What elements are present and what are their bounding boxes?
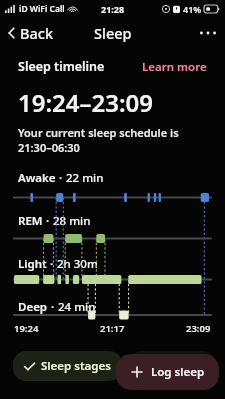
staticText: ·: [47, 256, 57, 272]
staticText: 22 min: [66, 170, 104, 186]
staticText: Light: [18, 256, 47, 272]
staticText: 21:28: [101, 3, 125, 15]
button[interactable]: Back: [0, 18, 62, 48]
staticText: Sleep score: [140, 358, 204, 374]
button[interactable]: Log sleep: [116, 354, 219, 390]
staticText: Sleep: [94, 23, 132, 43]
staticText: 21:17: [100, 322, 125, 335]
staticText: ·: [43, 213, 53, 229]
staticText: 2h 30m: [57, 256, 98, 272]
staticText: REM: [18, 213, 43, 229]
button[interactable]: Sleep score: [129, 351, 215, 381]
staticText: Sleep stages: [41, 358, 111, 374]
staticText: ·: [48, 299, 58, 315]
staticText: Log sleep: [151, 364, 205, 380]
staticText: 28 min: [53, 213, 91, 229]
staticText: Learn more: [142, 59, 207, 75]
button[interactable]: Learn more: [142, 59, 207, 75]
staticText: 21:30–06:30: [18, 140, 80, 155]
staticText: Deep: [18, 299, 48, 315]
staticText: iD WiFi Call: [19, 3, 65, 15]
staticText: Back: [20, 23, 54, 43]
staticText: ·: [56, 170, 66, 186]
staticText: Sleep timeline: [18, 58, 105, 75]
staticText: 19:24–23:09: [18, 86, 154, 119]
button[interactable]: Sleep stages: [13, 351, 122, 381]
staticText: 23:09: [186, 322, 211, 335]
staticText: Awake: [18, 170, 56, 186]
staticText: 41%: [183, 3, 202, 15]
staticText: 24 min: [58, 299, 96, 315]
staticText: Your current sleep schedule is: [18, 125, 179, 140]
staticText: 19:24: [14, 322, 39, 335]
button[interactable]: More options: [191, 23, 225, 43]
